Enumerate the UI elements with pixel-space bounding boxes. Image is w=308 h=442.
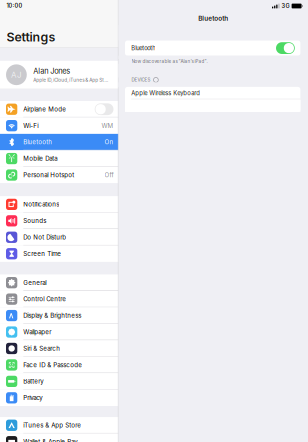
staticText: Screen Time <box>23 250 61 257</box>
staticText: Notifications <box>23 201 59 208</box>
staticText: 10:00 <box>6 2 22 9</box>
staticText: 3G <box>282 3 290 9</box>
button[interactable]: Wi-Fi <box>0 117 118 134</box>
staticText: Battery <box>23 378 43 385</box>
button[interactable]: Personal Hotspot <box>0 167 118 183</box>
staticText: Mobile Data <box>23 155 57 162</box>
staticText: AJ <box>11 70 22 80</box>
staticText: Wi-Fi <box>23 122 38 129</box>
staticText: Display & Brightness <box>23 312 81 319</box>
button[interactable]: Notifications <box>0 196 118 213</box>
staticText: On <box>104 138 113 146</box>
button[interactable]: Battery <box>0 373 118 389</box>
staticText: Bluetooth <box>23 138 52 146</box>
button[interactable]: AJ <box>0 61 118 89</box>
staticText: Face ID & Passcode <box>23 361 82 369</box>
button[interactable]: Sounds <box>0 213 118 229</box>
button[interactable]: General <box>0 274 118 291</box>
staticText: Wallpaper <box>23 328 51 336</box>
staticText: Alan Jones <box>33 67 70 76</box>
staticText: Apple Wireless Keyboard <box>131 90 200 97</box>
staticText: DEVICES <box>131 77 150 83</box>
staticText: Off <box>104 171 113 179</box>
button[interactable]: Do Not Disturb <box>0 229 118 245</box>
button[interactable]: Airplane Mode <box>0 101 118 117</box>
staticText: iTunes & App Store <box>23 422 81 429</box>
button[interactable]: iTunes & App Store <box>0 417 118 433</box>
staticText: Personal Hotspot <box>23 171 74 179</box>
staticText: WM <box>101 122 113 129</box>
button[interactable]: Wallpaper <box>0 324 118 340</box>
staticText: Bluetooth <box>198 15 228 22</box>
button[interactable]: Display & Brightness <box>0 307 118 324</box>
button[interactable]: Mobile Data <box>0 150 118 167</box>
button[interactable]: Control Centre <box>0 291 118 307</box>
staticText: Bluetooth <box>131 45 155 51</box>
button[interactable]: Screen Time <box>0 245 118 262</box>
staticText: General <box>23 279 46 286</box>
button[interactable]: Siri & Search <box>0 340 118 357</box>
staticText: Apple ID, iCloud, iTunes & App St… <box>33 77 108 83</box>
staticText: Airplane Mode <box>23 105 66 113</box>
staticText: Settings <box>6 29 55 44</box>
staticText: Privacy <box>23 394 42 401</box>
staticText: Do Not Disturb <box>23 234 66 241</box>
button[interactable]: Privacy <box>0 390 118 406</box>
staticText: Now discoverable as “Alan’s iPad”. <box>131 59 207 64</box>
staticText: Wallet & Apple Pay <box>23 438 77 442</box>
button[interactable]: Wallet & Apple Pay <box>0 433 118 442</box>
button[interactable]: Face ID & Passcode <box>0 357 118 373</box>
staticText: Sounds <box>23 217 46 224</box>
button[interactable]: Bluetooth <box>0 134 118 150</box>
staticText: Control Centre <box>23 295 66 303</box>
staticText: Siri & Search <box>23 345 60 352</box>
